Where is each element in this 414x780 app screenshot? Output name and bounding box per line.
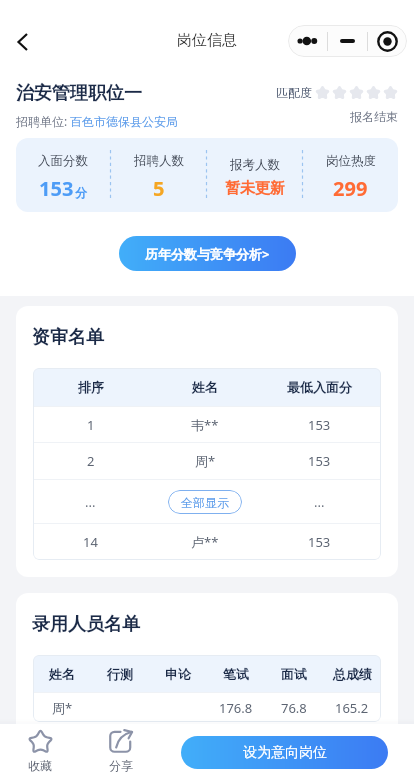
- staticText: 招聘人数: [134, 153, 184, 169]
- staticText: 面试: [281, 666, 307, 682]
- staticText: 姓名: [192, 379, 218, 395]
- staticText: 报名结束: [350, 109, 398, 124]
- staticText: 韦**: [191, 416, 219, 434]
- staticText: 2: [87, 452, 95, 470]
- staticText: 最低入面分: [287, 379, 352, 395]
- staticText: 岗位热度: [326, 153, 376, 169]
- button[interactable]: Back: [0, 20, 44, 64]
- staticText: 设为意向岗位: [243, 744, 327, 762]
- staticText: 卢**: [191, 533, 219, 551]
- staticText: 165.2: [335, 699, 369, 717]
- staticText: 历年分数与竞争分析>: [145, 245, 270, 263]
- staticText: 5: [153, 175, 165, 202]
- staticText: 资审名单: [32, 326, 104, 349]
- staticText: 笔试: [223, 666, 249, 682]
- button[interactable]: 全部显示: [168, 490, 242, 514]
- staticText: 299: [333, 175, 368, 202]
- button[interactable]: 收藏: [0, 724, 80, 780]
- staticText: 76.8: [281, 699, 307, 717]
- staticText: 153: [308, 533, 331, 551]
- staticText: 周*: [52, 699, 73, 717]
- staticText: 全部显示: [181, 495, 229, 510]
- staticText: 行测: [107, 666, 133, 682]
- button[interactable]: 百色市德保县公安局: [70, 114, 178, 129]
- staticText: 姓名: [49, 666, 75, 682]
- staticText: 分享: [109, 758, 133, 773]
- staticText: 治安管理职位一: [16, 82, 142, 105]
- staticText: 176.8: [219, 699, 253, 717]
- staticText: 招聘单位:: [16, 113, 68, 129]
- staticText: 周*: [195, 452, 216, 470]
- staticText: 153: [308, 416, 331, 434]
- button[interactable]: 设为意向岗位: [181, 736, 388, 769]
- staticText: 申论: [165, 666, 191, 682]
- staticText: 1: [87, 416, 95, 434]
- staticText: ...: [85, 493, 96, 511]
- staticText: 排序: [78, 379, 104, 395]
- staticText: ...: [314, 493, 325, 511]
- staticText: 14: [83, 533, 98, 551]
- staticText: 报考人数: [230, 157, 280, 173]
- staticText: 岗位信息: [177, 31, 237, 50]
- staticText: 收藏: [28, 758, 52, 773]
- staticText: 153: [39, 175, 74, 202]
- button[interactable]: 分享: [80, 724, 161, 780]
- staticText: 匹配度: [276, 85, 312, 100]
- staticText: 总成绩: [333, 666, 372, 682]
- staticText: 录用人员名单: [32, 613, 140, 636]
- staticText: 暂未更新: [225, 179, 285, 198]
- staticText: 153: [308, 452, 331, 470]
- button[interactable]: 历年分数与竞争分析>: [119, 236, 296, 271]
- staticText: 分: [75, 185, 87, 200]
- staticText: 入面分数: [38, 153, 88, 169]
